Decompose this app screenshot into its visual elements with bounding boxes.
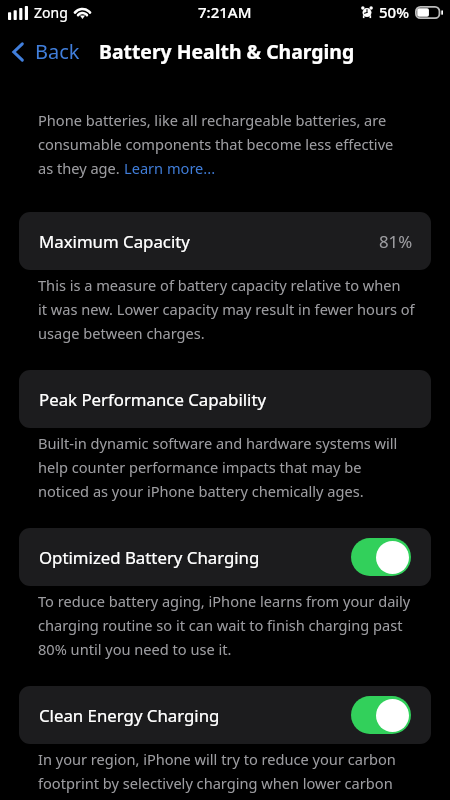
staticText: Back: [35, 38, 80, 65]
button[interactable]: Clean Energy Charging: [19, 686, 431, 744]
staticText: 7:21AM: [198, 2, 252, 22]
other: Back: [12, 42, 24, 62]
staticText: Zong: [34, 3, 68, 22]
staticText: 81%: [379, 230, 413, 253]
button[interactable]: Toggle: [351, 696, 411, 734]
button[interactable]: Peak Performance Capability: [19, 370, 431, 428]
button[interactable]: Toggle: [351, 538, 411, 576]
staticText: Battery Health & Charging: [99, 38, 355, 64]
staticText: Built-in dynamic software and hardware s…: [38, 433, 442, 501]
staticText: In your region, iPhone will try to reduc…: [38, 749, 442, 793]
staticText: 50%: [379, 2, 409, 22]
staticText: Clean Energy Charging: [39, 704, 220, 727]
button[interactable]: Optimized Battery Charging: [19, 528, 431, 586]
button[interactable]: Back: [0, 32, 90, 71]
staticText: Peak Performance Capability: [39, 388, 267, 411]
staticText: Optimized Battery Charging: [39, 546, 260, 569]
staticText: Phone batteries, like all rechargeable b…: [38, 110, 394, 154]
staticText: as they age.: [38, 158, 124, 178]
staticText: This is a measure of battery capacity re…: [38, 275, 442, 343]
button[interactable]: Maximum Capacity: [19, 212, 431, 270]
staticText: Maximum Capacity: [39, 230, 190, 253]
staticText: To reduce battery aging, iPhone learns f…: [38, 591, 442, 659]
button[interactable]: Learn more...: [124, 158, 216, 178]
